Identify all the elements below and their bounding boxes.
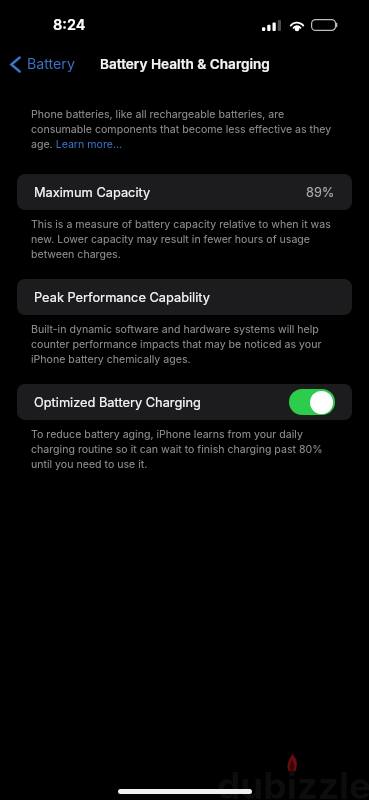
staticText: To reduce battery aging, iPhone learns f…: [31, 426, 343, 471]
staticText: Phone batteries, like all rechargeable b…: [31, 106, 339, 151]
button[interactable]: Optimized Battery Charging: [17, 384, 352, 420]
staticText: Battery: [27, 55, 75, 72]
staticText: dubizzle: [217, 763, 369, 800]
staticText: Peak Performance Capability: [34, 290, 210, 305]
staticText: 8:24: [53, 16, 86, 34]
staticText: Built-in dynamic software and hardware s…: [31, 321, 343, 366]
button[interactable]: Optimized Battery Charging toggle: [289, 389, 335, 415]
staticText: Maximum Capacity: [34, 185, 151, 200]
button[interactable]: Battery: [0, 51, 83, 76]
staticText: 89%: [306, 185, 335, 200]
button[interactable]: Peak Performance Capability: [17, 279, 352, 315]
staticText: Optimized Battery Charging: [34, 395, 201, 410]
staticText: This is a measure of battery capacity re…: [31, 216, 343, 261]
staticText: Battery Health & Charging: [100, 56, 270, 72]
button[interactable]: Maximum Capacity: [17, 174, 352, 210]
